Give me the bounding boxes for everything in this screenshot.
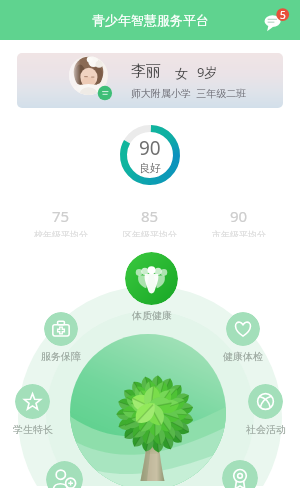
staticText: 服务保障 xyxy=(31,350,91,363)
staticText: 75 xyxy=(52,206,70,226)
button[interactable]: 体质健康 xyxy=(125,252,178,305)
staticText: 市年级平均分 xyxy=(212,229,266,237)
button[interactable]: 健康体检 xyxy=(226,312,260,346)
button[interactable]: 社会活动 xyxy=(248,384,283,419)
button[interactable]: Messages xyxy=(264,7,290,33)
button[interactable]: 心理健康 xyxy=(46,461,83,488)
staticText: 良好 xyxy=(139,161,161,175)
staticText: 区年级平均分 xyxy=(123,229,177,237)
staticText: 李丽 xyxy=(131,62,161,81)
staticText: 90 xyxy=(230,206,248,226)
staticText: 90 xyxy=(139,135,161,161)
staticText: 师大附属小学 三年级二班 xyxy=(131,86,247,100)
staticText: 校年级平均分 xyxy=(34,229,88,237)
button[interactable]: 85 xyxy=(105,206,194,237)
staticText: 女 xyxy=(175,65,188,81)
button[interactable]: 学生特长 xyxy=(15,384,50,419)
button[interactable]: 服务保障 xyxy=(44,312,78,346)
staticText: 85 xyxy=(141,206,159,226)
staticText: 9岁 xyxy=(197,63,218,81)
button[interactable]: 90 xyxy=(194,206,283,237)
staticText: 青少年智慧服务平台 xyxy=(92,12,209,28)
staticText: 体质健康 xyxy=(122,309,182,322)
staticText: 5 xyxy=(280,8,286,22)
staticText: 社会活动 xyxy=(236,423,296,436)
staticText: 学生特长 xyxy=(3,423,63,436)
button[interactable]: 75 xyxy=(17,206,105,237)
staticText: 健康体检 xyxy=(213,350,273,363)
button[interactable]: 荣誉奖项 xyxy=(222,460,258,488)
button[interactable]: 李丽 xyxy=(17,53,283,108)
